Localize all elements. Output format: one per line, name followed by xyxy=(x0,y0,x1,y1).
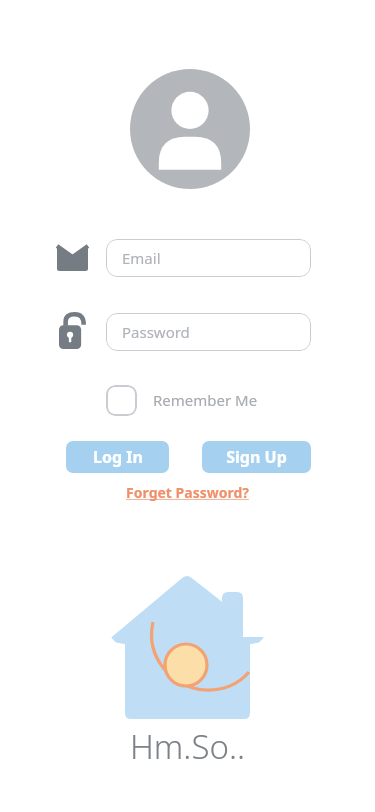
button[interactable]: Password xyxy=(106,313,311,351)
button[interactable]: Email xyxy=(106,239,311,277)
button[interactable]: Sign Up xyxy=(202,441,311,473)
other: Email xyxy=(57,246,88,271)
button[interactable]: Log In xyxy=(66,441,169,473)
other: Hm.So.. logo xyxy=(105,570,270,722)
staticText: Forget Password? xyxy=(126,483,249,501)
staticText: Sign Up xyxy=(226,446,287,468)
button[interactable]: Remember Me xyxy=(106,384,258,416)
staticText: Hm.So.. xyxy=(130,724,245,769)
other: Password xyxy=(59,313,86,349)
staticText: Log In xyxy=(93,446,143,468)
staticText: Remember Me xyxy=(153,390,258,410)
button[interactable]: Forget Password? xyxy=(122,481,253,503)
staticText: Password xyxy=(122,322,190,342)
staticText: Email xyxy=(122,248,161,268)
